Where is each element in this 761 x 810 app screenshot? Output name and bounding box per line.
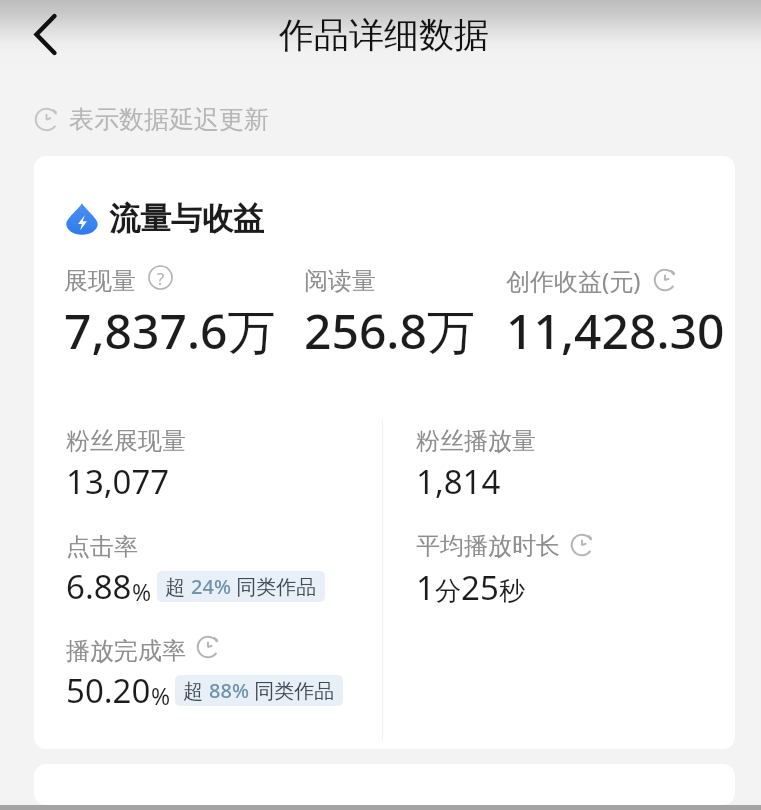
staticText: 创作收益(元) (506, 264, 641, 297)
staticText: % (151, 680, 171, 711)
button[interactable]: 超 (175, 675, 343, 706)
staticText: % (132, 576, 152, 607)
staticText: 阅读量 (304, 266, 376, 296)
staticText: 同类作品 (231, 573, 317, 600)
staticText: 粉丝播放量 (416, 426, 536, 456)
staticText: 24% (191, 573, 231, 600)
staticText: 7,837.6万 (64, 298, 276, 364)
staticText: 6.88 (66, 564, 132, 609)
staticText: 作品详细数据 (279, 13, 489, 57)
staticText: 11,428.30 (506, 298, 725, 363)
button[interactable]: Back (10, 2, 78, 70)
other: What is impressions? (148, 265, 173, 290)
staticText: 50.20 (66, 668, 151, 713)
staticText: 88% (209, 677, 249, 704)
staticText: 秒 (499, 575, 525, 608)
staticText: 流量与收益 (109, 199, 264, 238)
staticText: 展现量 (64, 266, 136, 296)
staticText: 1 (416, 565, 435, 610)
button[interactable]: 展现量 (64, 266, 173, 296)
staticText: ? (157, 267, 165, 289)
staticText: 超 (183, 677, 209, 704)
staticText: 表示数据延迟更新 (69, 104, 269, 135)
button[interactable]: 超 (157, 571, 325, 602)
staticText: 超 (165, 573, 191, 600)
staticText: 25 (461, 565, 499, 610)
staticText: 播放完成率 (66, 636, 186, 666)
staticText: 1,814 (416, 459, 501, 504)
staticText: 256.8万 (304, 298, 475, 364)
staticText: 平均播放时长 (416, 531, 560, 561)
staticText: 13,077 (66, 459, 170, 504)
staticText: 点击率 (66, 532, 138, 562)
staticText: 粉丝展现量 (66, 426, 186, 456)
staticText: 分 (435, 575, 461, 608)
staticText: 同类作品 (249, 677, 335, 704)
